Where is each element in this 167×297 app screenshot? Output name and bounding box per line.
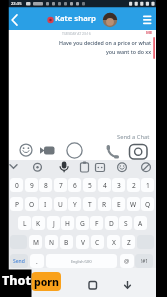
button[interactable]: M (29, 235, 42, 249)
staticText: N (49, 238, 55, 247)
staticText: !#1 (141, 258, 148, 264)
button[interactable]: I (39, 197, 52, 211)
button[interactable]: U (54, 197, 67, 211)
staticText: K (36, 219, 41, 228)
staticText: I (44, 200, 47, 209)
button[interactable]: S (119, 216, 132, 230)
button[interactable] (100, 130, 152, 144)
button[interactable]: 8 (39, 178, 52, 192)
button[interactable]: Y (68, 197, 81, 211)
button[interactable]: B (60, 235, 73, 249)
button[interactable]: 7 (54, 178, 67, 192)
staticText: TUESDAY AT 23:16 (62, 31, 91, 36)
staticText: 9 (30, 181, 34, 190)
button[interactable]: 5 (83, 178, 96, 192)
button[interactable]: 9 (25, 178, 38, 192)
staticText: ME (146, 30, 153, 36)
staticText: T (88, 200, 92, 209)
button[interactable]: D (105, 216, 118, 230)
button[interactable]: N (45, 235, 58, 249)
button[interactable]: @ (120, 254, 134, 268)
staticText: 1 (146, 181, 150, 190)
staticText: S (124, 219, 128, 228)
staticText: Z (127, 238, 131, 247)
button[interactable]: 4 (98, 178, 111, 192)
staticText: 0 (15, 181, 19, 190)
staticText: H (65, 219, 70, 228)
staticText: 4 (103, 181, 107, 190)
staticText: W (130, 200, 137, 209)
button[interactable]: K (32, 216, 45, 230)
button[interactable]: 3 (112, 178, 125, 192)
staticText: P (15, 200, 19, 209)
button[interactable]: J (47, 216, 60, 230)
staticText: 7 (59, 181, 63, 190)
button[interactable]: !#1 (135, 254, 153, 268)
button[interactable]: . (30, 254, 44, 268)
staticText: 5 (88, 181, 92, 190)
staticText: J (53, 219, 55, 228)
button[interactable]: C (91, 235, 104, 249)
staticText: you want to do xx (106, 48, 152, 55)
button[interactable]: P (10, 197, 23, 211)
button[interactable]: 0 (10, 178, 23, 192)
staticText: Have you decided on a price or what (59, 39, 152, 46)
staticText: porn (34, 275, 60, 289)
button[interactable]: O (25, 197, 38, 211)
button[interactable]: A (134, 216, 147, 230)
button[interactable]: Q (141, 197, 154, 211)
staticText: @ (124, 257, 130, 265)
staticText: V (81, 238, 85, 247)
button[interactable]: Send (10, 254, 28, 268)
staticText: G (80, 219, 85, 228)
button[interactable]: T (83, 197, 96, 211)
button[interactable]: 2 (127, 178, 140, 192)
staticText: . (36, 257, 38, 266)
staticText: Q (145, 200, 151, 209)
button[interactable]: Z (122, 235, 135, 249)
staticText: 23:35 (11, 1, 22, 7)
staticText: L (23, 219, 27, 228)
button[interactable]: F (90, 216, 103, 230)
button[interactable]: G (76, 216, 89, 230)
staticText: 3 (117, 181, 121, 190)
staticText: Kate sharp (55, 13, 97, 24)
button[interactable]: V (76, 235, 89, 249)
staticText: B (64, 238, 69, 247)
staticText: O (29, 200, 35, 209)
button[interactable] (40, 8, 102, 30)
button[interactable]: L (18, 216, 31, 230)
staticText: U (58, 200, 63, 209)
staticText: C (95, 238, 100, 247)
staticText: A (138, 219, 143, 228)
staticText: E (117, 200, 121, 209)
staticText: 2 (132, 181, 136, 190)
staticText: X (112, 238, 116, 247)
button[interactable]: English (UK) (46, 254, 117, 268)
button[interactable]: 6 (68, 178, 81, 192)
staticText: Y (73, 200, 77, 209)
button[interactable]: W (127, 197, 140, 211)
staticText: 6 (73, 181, 77, 190)
button[interactable]: 1 (141, 178, 154, 192)
button[interactable]: E (112, 197, 125, 211)
staticText: 8 (44, 181, 48, 190)
staticText: R (102, 200, 107, 209)
button[interactable]: R (98, 197, 111, 211)
button[interactable]: H (61, 216, 74, 230)
staticText: Send (13, 258, 25, 265)
staticText: English (UK) (71, 259, 92, 264)
staticText: Thot (2, 272, 31, 289)
staticText: F (95, 219, 99, 228)
staticText: D (109, 219, 114, 228)
staticText: M (33, 238, 39, 247)
button[interactable]: X (107, 235, 120, 249)
staticText: Send a Chat (117, 133, 150, 141)
